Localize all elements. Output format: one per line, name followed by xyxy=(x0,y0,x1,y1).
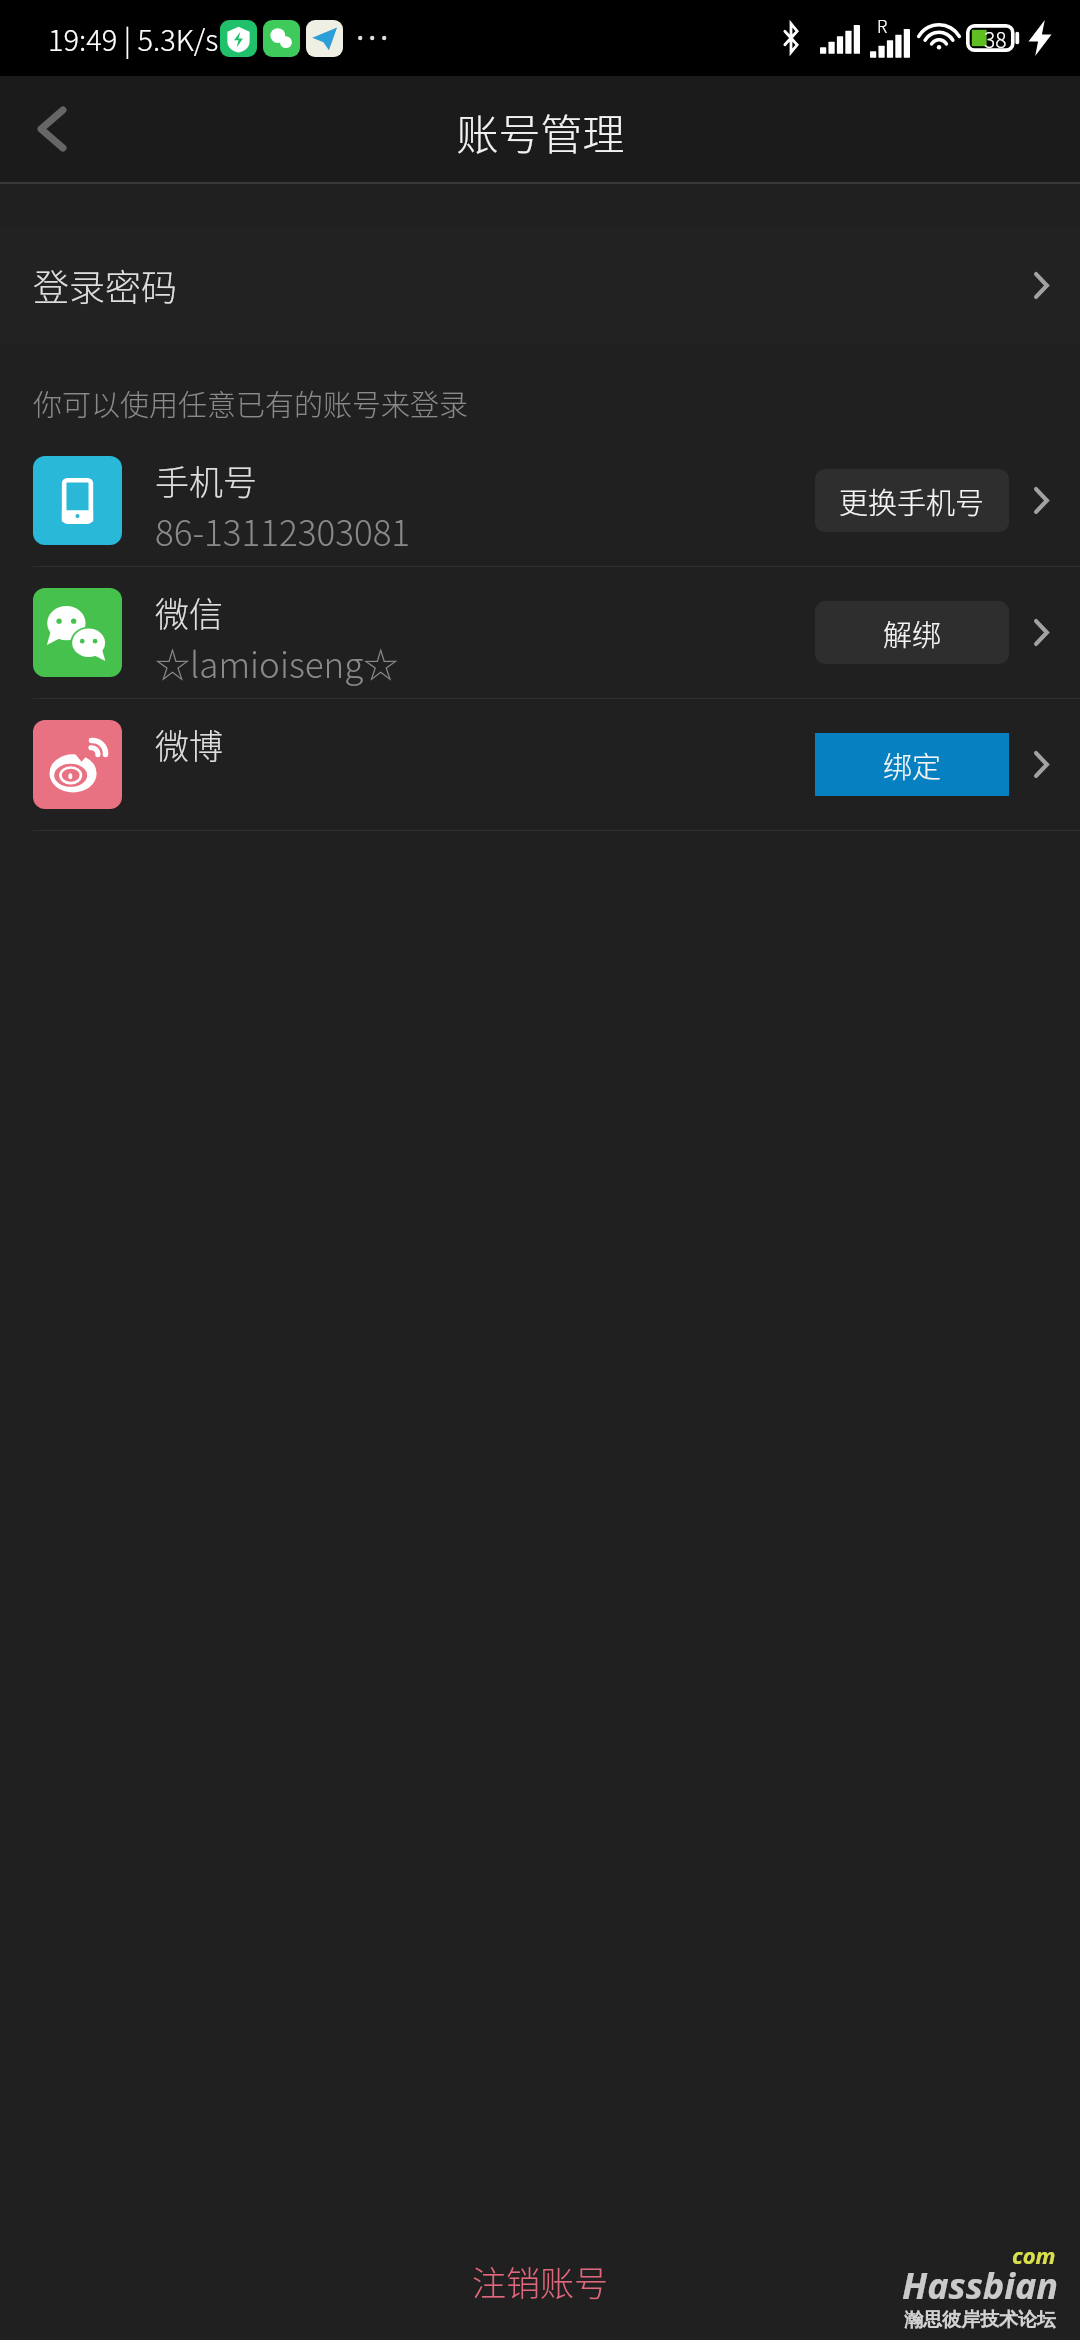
staticText: com xyxy=(1012,2240,1056,2270)
button[interactable]: 手机号 xyxy=(0,435,1080,566)
staticText: Hassbian xyxy=(902,2261,1058,2310)
button[interactable]: 登录密码 xyxy=(0,226,1080,344)
staticText: 手机号 xyxy=(155,456,257,505)
staticText: 更换手机号 xyxy=(839,480,985,522)
button[interactable]: 更换手机号 xyxy=(815,469,1009,532)
staticText: 瀚思彼岸技术论坛 xyxy=(904,2308,1056,2332)
button[interactable]: Back xyxy=(14,90,92,168)
button[interactable]: 微博 xyxy=(0,699,1080,830)
button[interactable]: 解绑 xyxy=(815,601,1009,664)
staticText: 微信 xyxy=(155,588,223,637)
button[interactable]: 微信 xyxy=(0,567,1080,698)
button[interactable]: 绑定 xyxy=(815,733,1009,796)
staticText: R xyxy=(877,13,888,38)
staticText: 解绑 xyxy=(883,612,942,654)
staticText: ☆lamioiseng☆ xyxy=(155,637,399,688)
staticText: 登录密码 xyxy=(33,259,178,311)
staticText: 绑定 xyxy=(883,744,942,786)
staticText: 微博 xyxy=(155,720,223,769)
staticText: 账号管理 xyxy=(456,101,625,162)
button[interactable]: 注销账号 xyxy=(460,2251,620,2312)
staticText: 你可以使用任意已有的账号来登录 xyxy=(33,382,469,424)
staticText: 86-13112303081 xyxy=(155,505,411,556)
staticText: 19:49 | 5.3K/s xyxy=(48,17,219,59)
staticText: 38 xyxy=(984,24,1007,52)
